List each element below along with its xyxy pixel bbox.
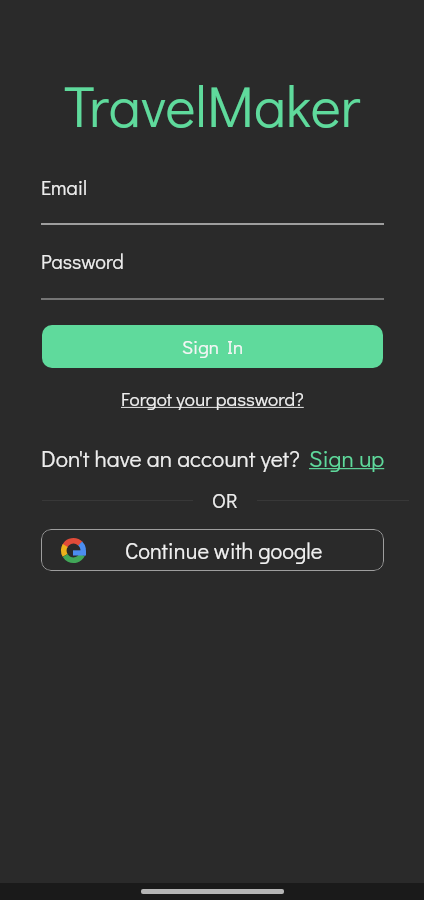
staticText: Continue with google: [125, 536, 323, 565]
other: Google: [61, 538, 86, 563]
button[interactable]: Google: [41, 529, 384, 571]
staticText: TravelMaker: [0, 67, 424, 142]
staticText: OR: [212, 487, 238, 513]
staticText: Email: [41, 174, 88, 200]
staticText: Don't have an account yet?: [41, 443, 300, 473]
button[interactable]: Forgot your password?: [121, 386, 304, 411]
staticText: Sign In: [182, 334, 244, 359]
button[interactable]: Sign In: [42, 325, 383, 368]
button[interactable]: Sign up: [309, 443, 385, 473]
staticText: Password: [41, 248, 124, 274]
